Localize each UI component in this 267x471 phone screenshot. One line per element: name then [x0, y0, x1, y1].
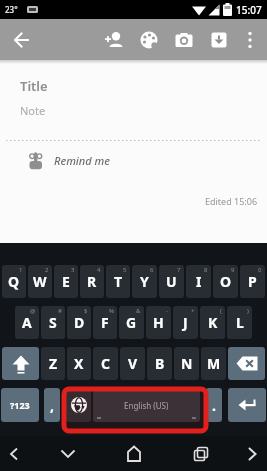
button[interactable]: K — [200, 306, 225, 339]
button[interactable]: E — [54, 265, 78, 298]
staticText: G — [126, 313, 137, 332]
staticText: @ — [30, 307, 36, 315]
staticText: Q — [8, 272, 20, 291]
staticText: L — [236, 313, 244, 332]
button[interactable] — [203, 24, 235, 56]
staticText: + — [191, 307, 195, 315]
staticText: Remind me — [54, 153, 110, 168]
staticText: S — [49, 313, 57, 332]
staticText: Title — [20, 77, 48, 95]
button[interactable]: X — [67, 347, 91, 380]
staticText: U — [166, 272, 177, 291]
staticText: H — [153, 313, 164, 332]
button[interactable] — [192, 445, 210, 463]
button[interactable] — [2, 347, 39, 380]
button[interactable] — [168, 24, 200, 56]
staticText: 1 — [19, 266, 23, 274]
button[interactable] — [237, 27, 263, 53]
button[interactable]: A — [15, 306, 39, 339]
staticText: 5 — [123, 266, 127, 274]
button[interactable] — [98, 24, 130, 56]
button[interactable]: M — [201, 347, 226, 380]
staticText: Note — [20, 103, 46, 118]
staticText: ( — [220, 307, 222, 315]
button[interactable]: Y — [132, 265, 157, 298]
staticText: 6 — [150, 266, 154, 274]
staticText: P — [248, 272, 257, 291]
button[interactable]: O — [213, 265, 238, 298]
button[interactable]: Q — [2, 265, 26, 298]
button[interactable]: , — [44, 388, 60, 422]
button[interactable] — [228, 347, 265, 380]
button[interactable]: N — [174, 347, 199, 380]
staticText: D — [74, 313, 85, 332]
button[interactable]: P — [240, 265, 265, 298]
button[interactable] — [244, 446, 260, 462]
button[interactable]: G — [119, 306, 144, 339]
staticText: V — [128, 354, 138, 373]
button[interactable] — [8, 26, 36, 54]
button[interactable]: R — [80, 265, 104, 298]
staticText: . — [212, 396, 216, 415]
staticText: W — [33, 272, 47, 291]
button[interactable]: B — [147, 347, 172, 380]
staticText: 8 — [204, 266, 208, 274]
staticText: Z — [49, 354, 58, 373]
staticText: - — [166, 307, 168, 315]
staticText: ) — [247, 307, 249, 315]
staticText: 23° — [5, 4, 18, 15]
staticText: 4 — [97, 266, 101, 274]
staticText: A — [22, 313, 32, 332]
staticText: , — [50, 396, 54, 415]
button[interactable] — [228, 388, 266, 422]
button[interactable]: Remind me — [0, 147, 267, 173]
button[interactable]: H — [146, 306, 171, 339]
button[interactable]: ?123 — [1, 388, 39, 422]
staticText: Edited 15:06 — [205, 195, 258, 207]
button[interactable]: U — [159, 265, 184, 298]
button[interactable]: D — [67, 306, 91, 339]
staticText: # — [58, 307, 62, 315]
button[interactable] — [133, 24, 165, 56]
staticText: J — [183, 313, 188, 332]
staticText: I — [196, 272, 202, 291]
staticText: X — [74, 354, 84, 373]
staticText: Y — [140, 272, 149, 291]
button[interactable]: F — [93, 306, 117, 339]
staticText: ?123 — [10, 399, 30, 411]
staticText: & — [136, 307, 141, 315]
button[interactable]: S — [41, 306, 65, 339]
staticText: M — [207, 354, 221, 373]
staticText: T — [114, 272, 123, 291]
staticText: 0 — [258, 266, 262, 274]
button[interactable]: W — [28, 265, 52, 298]
staticText: $ — [84, 307, 88, 315]
staticText: 15:07 — [236, 3, 262, 17]
staticText: E — [62, 272, 70, 291]
button[interactable]: J — [173, 306, 198, 339]
staticText: F — [101, 313, 109, 332]
staticText: B — [155, 354, 165, 373]
button[interactable]: Z — [41, 347, 65, 380]
button[interactable] — [66, 388, 91, 422]
button[interactable]: . — [206, 388, 222, 422]
staticText: K — [208, 313, 218, 332]
button[interactable]: I — [186, 265, 211, 298]
button[interactable] — [7, 447, 21, 461]
button[interactable]: English (US) — [93, 388, 200, 422]
staticText: 9 — [231, 266, 235, 274]
button[interactable] — [124, 444, 144, 464]
button[interactable]: C — [93, 347, 118, 380]
staticText: 3 — [71, 266, 75, 274]
staticText: 2 — [45, 266, 49, 274]
button[interactable] — [59, 445, 77, 463]
staticText: O — [220, 272, 232, 291]
button[interactable]: V — [120, 347, 145, 380]
staticText: 7 — [177, 266, 181, 274]
staticText: % — [109, 307, 114, 315]
staticText: English (US) — [124, 400, 169, 411]
button[interactable]: T — [106, 265, 130, 298]
staticText: R — [87, 272, 97, 291]
staticText: N — [181, 354, 193, 373]
button[interactable]: L — [227, 306, 252, 339]
